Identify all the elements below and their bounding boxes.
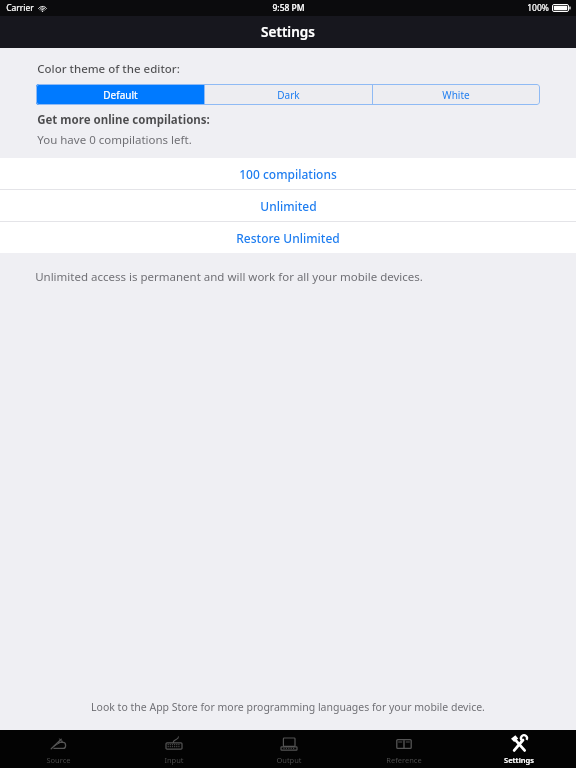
button[interactable]: White bbox=[372, 84, 540, 105]
button[interactable]: Output bbox=[231, 730, 346, 768]
staticText: Settings bbox=[504, 755, 534, 765]
staticText: Carrier bbox=[6, 2, 34, 14]
button[interactable]: 100 compilations bbox=[0, 158, 576, 189]
staticText: Source bbox=[46, 755, 71, 765]
staticText: Default bbox=[103, 88, 138, 102]
button[interactable]: Reference bbox=[346, 730, 461, 768]
button[interactable]: Source bbox=[0, 730, 116, 768]
staticText: Restore Unlimited bbox=[236, 230, 340, 246]
staticText: 9:58 PM bbox=[272, 2, 305, 14]
staticText: Dark bbox=[277, 88, 300, 102]
staticText: 100% bbox=[527, 2, 549, 14]
staticText: Unlimited access is permanent and will w… bbox=[35, 269, 423, 285]
button[interactable]: Input bbox=[116, 730, 231, 768]
staticText: Settings bbox=[261, 23, 315, 41]
staticText: Input bbox=[164, 755, 184, 765]
staticText: 100 compilations bbox=[239, 166, 337, 182]
button[interactable]: Unlimited bbox=[0, 190, 576, 221]
staticText: You have 0 compilations left. bbox=[37, 132, 192, 148]
button[interactable]: Dark bbox=[204, 84, 372, 105]
button[interactable]: Default bbox=[36, 84, 204, 105]
staticText: Output bbox=[276, 755, 302, 765]
staticText: White bbox=[442, 88, 470, 102]
staticText: Get more online compilations: bbox=[37, 112, 210, 128]
staticText: Look to the App Store for more programmi… bbox=[91, 700, 485, 714]
button[interactable]: Settings bbox=[461, 730, 576, 768]
staticText: Reference bbox=[386, 755, 422, 765]
button[interactable]: Restore Unlimited bbox=[0, 222, 576, 253]
staticText: Color theme of the editor: bbox=[37, 61, 180, 77]
staticText: Unlimited bbox=[260, 198, 317, 214]
